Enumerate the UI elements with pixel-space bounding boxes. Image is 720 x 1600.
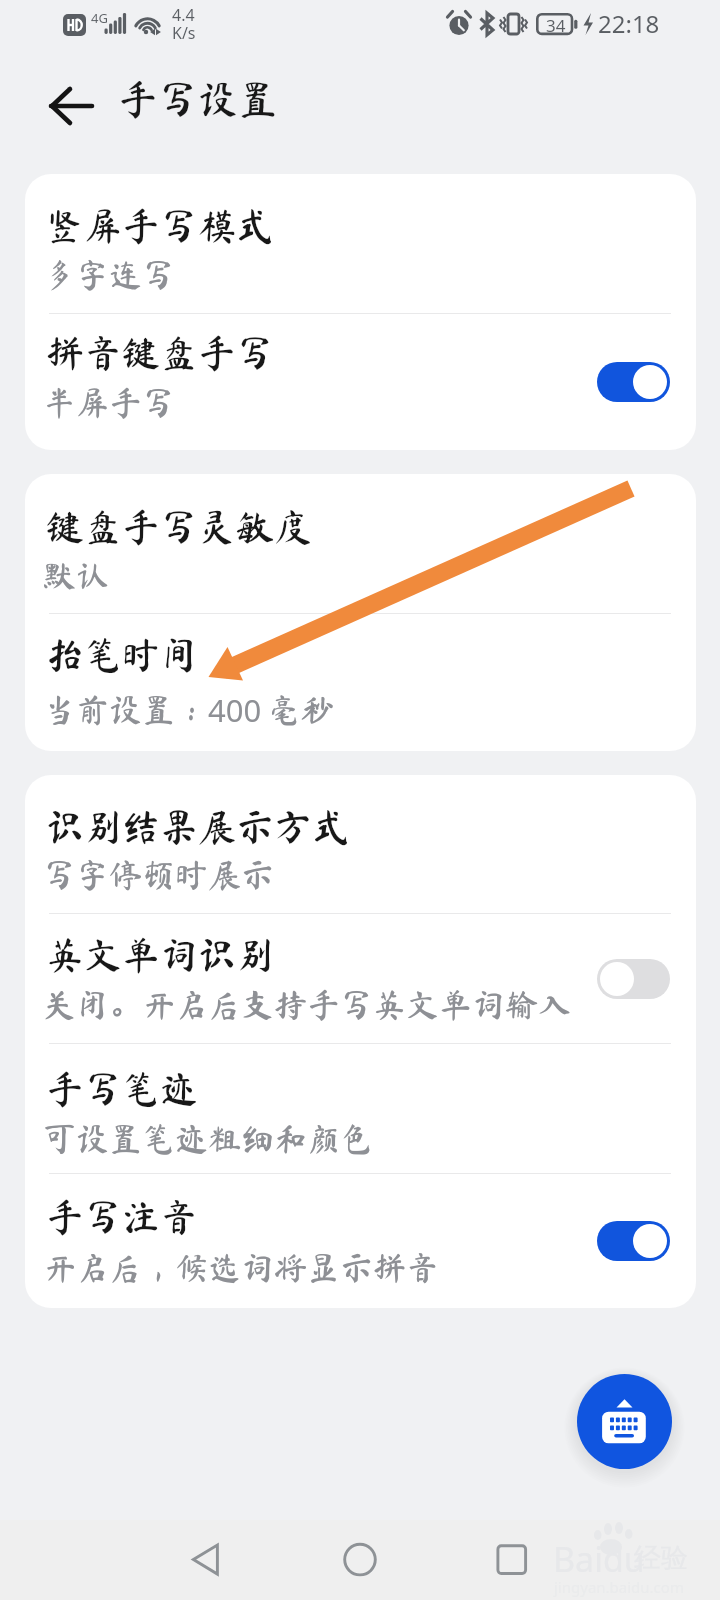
button[interactable]: 手写笔迹 (25, 1044, 696, 1173)
button[interactable]: 手写注音 (25, 1174, 696, 1308)
button[interactable]: 键盘手写灵敏度 (25, 474, 696, 613)
button[interactable]: Switch on (597, 362, 670, 402)
staticText: 手写笔迹 (46, 1070, 199, 1108)
staticText: 默认 (43, 559, 109, 592)
staticText: 34 (546, 14, 566, 37)
button[interactable]: Open keyboard (577, 1374, 672, 1469)
staticText: 抬笔时间 (46, 636, 199, 674)
staticText: 半屏手写 (43, 386, 175, 419)
button[interactable]: Recent apps (477, 1520, 547, 1600)
staticText: 手写注音 (46, 1198, 199, 1236)
staticText: 经验 (634, 1541, 688, 1575)
button[interactable]: Switch off (597, 959, 670, 999)
button[interactable]: 竖屏手写模式 (25, 174, 696, 313)
staticText: 多字连写 (43, 258, 175, 291)
button[interactable]: 抬笔时间 (25, 614, 696, 751)
staticText: 4.4 K/s (172, 4, 196, 44)
staticText: 可设置笔迹粗细和颜色 (43, 1122, 373, 1155)
button[interactable]: 英文单词识别 (25, 914, 696, 1043)
staticText: Baidu (553, 1536, 645, 1582)
staticText: 竖屏手写模式 (46, 207, 275, 245)
button[interactable]: 识别结果展示方式 (25, 775, 696, 913)
staticText: 开启后，候选词将显示拼音 (43, 1251, 439, 1284)
staticText: 识别结果展示方式 (46, 808, 351, 846)
staticText: 4G (91, 9, 108, 27)
staticText: 拼音键盘手写 (46, 334, 275, 372)
button[interactable]: 拼音键盘手写 (25, 314, 696, 450)
staticText: 英文单词识别 (46, 936, 275, 974)
button[interactable]: Home (325, 1520, 395, 1600)
staticText: 键盘手写灵敏度 (46, 508, 313, 546)
button[interactable]: Switch on (597, 1221, 670, 1261)
staticText: 手写设置 (118, 79, 278, 119)
staticText: 写字停顿时展示 (43, 858, 274, 891)
staticText: 22:18 (598, 7, 660, 40)
button[interactable]: Back (35, 76, 99, 136)
button[interactable]: Back (175, 1520, 245, 1600)
staticText: 当前设置：400 毫秒 (43, 689, 334, 731)
staticText: 关闭。开启后支持手写英文单词输入 (43, 988, 571, 1021)
